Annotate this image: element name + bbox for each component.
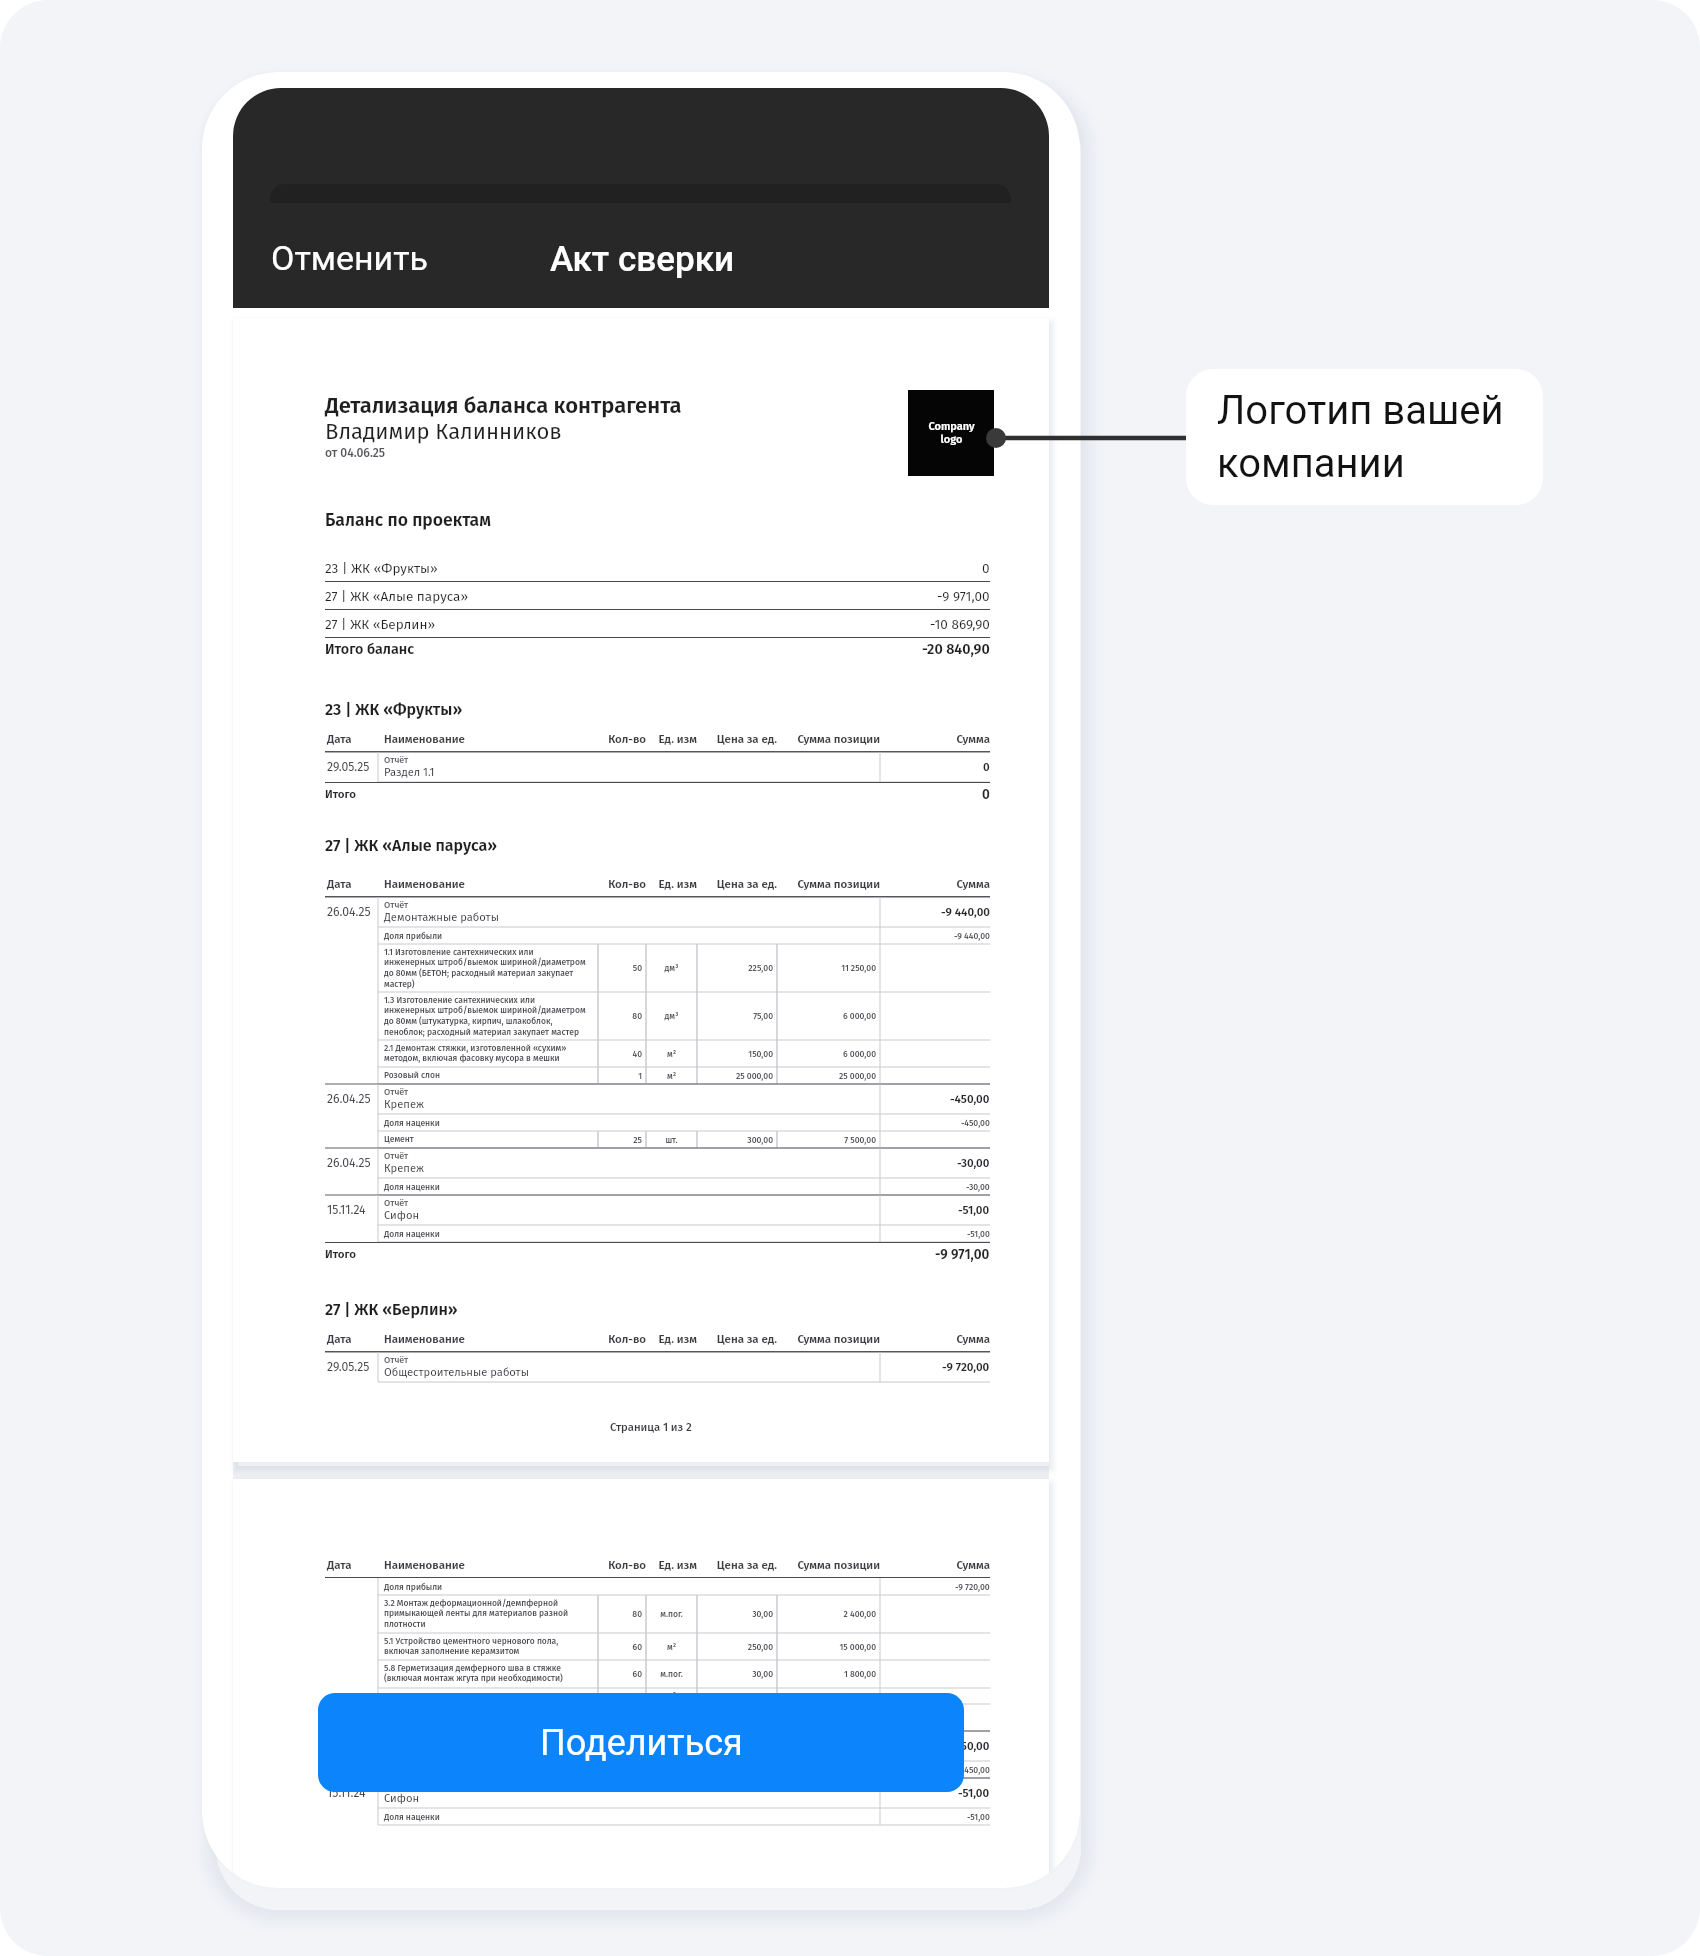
staticText: от 04.06.25 (325, 446, 386, 460)
staticText: Сумма (880, 732, 990, 746)
staticText: Демонтажные работы (384, 911, 499, 924)
button[interactable]: Поделиться (318, 1693, 964, 1792)
staticText: 14 000,00 (781, 1691, 876, 1701)
staticText: Наименование (384, 1558, 598, 1572)
staticText: 40 (602, 1049, 642, 1059)
staticText: Дата (327, 1332, 378, 1346)
staticText: 75,00 (701, 1011, 773, 1021)
staticText: 7 500,00 (781, 1135, 876, 1145)
staticText: 6 000,00 (781, 1011, 876, 1021)
staticText: Отчёт (384, 1087, 409, 1098)
staticText: Доля наценки (384, 1118, 440, 1128)
staticText: Сифон (384, 1209, 420, 1222)
staticText: 27 | ЖК «Берлин» (325, 1300, 458, 1319)
staticText: Доля наценки (384, 1182, 440, 1192)
staticText: -30,00 (966, 1182, 990, 1192)
staticText: Отчёт (384, 755, 409, 766)
staticText: -51,00 (967, 1812, 990, 1822)
staticText: дм³ (650, 963, 693, 973)
staticText: 23 | ЖК «Фрукты» (325, 560, 438, 576)
staticText: Цемент (384, 1134, 414, 1144)
staticText: Общестроительные работы (384, 1366, 529, 1379)
staticText: Ед. изм (646, 1332, 697, 1346)
staticText: Кол-во (598, 732, 646, 746)
staticText: 15 000,00 (781, 1642, 876, 1652)
staticText: -9 720,00 (942, 1360, 990, 1374)
staticText: Крепеж (384, 1098, 424, 1111)
staticText: -9 440,00 (954, 931, 990, 941)
staticText: м.пог. (650, 1669, 693, 1679)
staticText: Company logo (928, 420, 975, 446)
staticText: Раздел 1.1 (384, 766, 435, 779)
staticText: Сумма позиции (777, 732, 880, 746)
staticText: Отчёт (384, 1151, 409, 1162)
staticText: 29.05.25 (327, 760, 370, 775)
staticText: Дата (327, 877, 378, 891)
staticText: -450,00 (950, 1092, 990, 1106)
staticText: Владимир Калинников (325, 418, 562, 444)
staticText: 2 400,00 (781, 1609, 876, 1619)
staticText: Крепеж (384, 1162, 424, 1175)
staticText: Цена за ед. (697, 1558, 777, 1572)
staticText: Сумма позиции (777, 1558, 880, 1572)
staticText: Сумма (880, 877, 990, 891)
staticText: Доля прибыли (384, 931, 443, 941)
staticText: 300,00 (701, 1135, 773, 1145)
staticText: Пеноплекс (384, 1691, 428, 1701)
staticText: Сумма (880, 1332, 990, 1346)
staticText: м² (650, 1691, 693, 1701)
staticText: 80 (602, 1011, 642, 1021)
staticText: 0 (982, 560, 990, 576)
staticText: м² (650, 1049, 693, 1059)
staticText: 0 (982, 786, 990, 802)
staticText: -9 720,00 (955, 1582, 990, 1592)
staticText: 1.3 Изготовление сантехнических или инже… (384, 995, 586, 1038)
staticText: 26.04.25 (327, 1092, 371, 1107)
staticText: -10 869,90 (930, 616, 990, 632)
staticText: Кол-во (598, 877, 646, 891)
staticText: Сумма позиции (777, 877, 880, 891)
staticText: Наименование (384, 1332, 598, 1346)
staticText: 30,00 (701, 1669, 773, 1679)
staticText: Сумма (880, 1558, 990, 1572)
staticText: -450,00 (961, 1118, 990, 1128)
staticText: 350,00 (701, 1691, 773, 1701)
staticText: Итого (325, 787, 356, 801)
staticText: Кол-во (598, 1332, 646, 1346)
staticText: -30,00 (957, 1156, 990, 1170)
staticText: Дата (327, 732, 378, 746)
staticText: 27 | ЖК «Алые паруса» (325, 836, 498, 855)
staticText: 0 (983, 760, 990, 774)
staticText: Отчёт (384, 900, 409, 911)
staticText: 60 (602, 1642, 642, 1652)
button[interactable]: Логотип компании (908, 390, 994, 476)
staticText: Поделиться (540, 1722, 743, 1764)
staticText: Цена за ед. (697, 732, 777, 746)
staticText: шт. (650, 1135, 693, 1145)
staticText: 3.2 Монтаж деформационной/демпферной при… (384, 1598, 586, 1630)
staticText: Баланс по проектам (325, 510, 491, 531)
staticText: м.пог. (650, 1609, 693, 1619)
staticText: 27 | ЖК «Алые паруса» (325, 588, 469, 604)
staticText: Отменить (271, 238, 429, 278)
staticText: Цена за ед. (697, 1332, 777, 1346)
staticText: 15.11.24 (327, 1203, 366, 1218)
staticText: 26.04.25 (327, 905, 371, 920)
staticText: -450,00 (950, 1739, 990, 1753)
staticText: -9 440,00 (941, 905, 990, 919)
staticText: 1.1 Изготовление сантехнических или инже… (384, 947, 586, 990)
staticText: Сифон (384, 1792, 420, 1805)
staticText: Отчёт (384, 1198, 409, 1209)
staticText: Ед. изм (646, 732, 697, 746)
button[interactable]: Отменить (257, 226, 443, 290)
staticText: -51,00 (958, 1203, 990, 1217)
staticText: 150,00 (701, 1049, 773, 1059)
staticText: 30,00 (701, 1609, 773, 1619)
staticText: Наименование (384, 877, 598, 891)
staticText: Отчёт (384, 1355, 409, 1366)
